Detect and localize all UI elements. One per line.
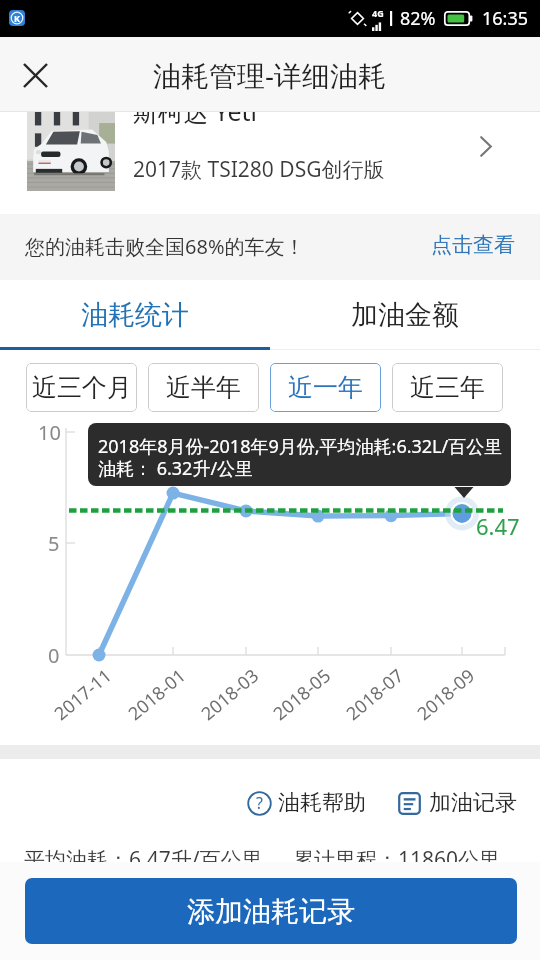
staticText: 加油记录: [429, 789, 517, 817]
button[interactable]: 近半年: [148, 363, 259, 412]
button[interactable]: 近一年: [270, 363, 381, 412]
staticText: 16:35: [482, 6, 529, 31]
staticText: 油耗： 6.32升/公里: [98, 456, 254, 481]
staticText: 油耗管理-详细油耗: [153, 56, 387, 94]
staticText: 6.47: [476, 511, 520, 541]
staticText: 油耗统计: [81, 298, 189, 332]
button[interactable]: 近三个月: [26, 363, 137, 412]
button[interactable]: Close: [12, 52, 58, 98]
staticText: 近一年: [288, 372, 363, 403]
button[interactable]: 加油金额: [270, 280, 540, 350]
staticText: 加油金额: [351, 298, 459, 332]
staticText: 累计里程：11860公里: [293, 845, 501, 862]
staticText: 平均油耗：6.47升/百公里: [24, 845, 263, 862]
button[interactable]: 加油记录: [398, 788, 517, 818]
staticText: 0: [48, 642, 60, 669]
staticText: 添加油耗记录: [187, 894, 355, 929]
button[interactable]: 您的油耗击败全国68%的车友！: [0, 214, 540, 280]
staticText: 点击查看: [431, 232, 515, 258]
staticText: 您的油耗击败全国68%的车友！: [25, 233, 305, 260]
staticText: 油耗帮助: [278, 789, 366, 817]
staticText: 82%: [400, 6, 436, 31]
staticText: K: [14, 12, 20, 24]
button[interactable]: ?: [247, 788, 366, 818]
staticText: 4G: [372, 7, 384, 19]
staticText: 斯柯达 Yeti: [133, 112, 257, 128]
button[interactable]: 油耗统计: [0, 280, 270, 350]
staticText: 5: [48, 530, 60, 557]
button[interactable]: 斯柯达 Yeti: [0, 112, 540, 214]
staticText: ?: [256, 792, 263, 814]
button[interactable]: 添加油耗记录: [25, 878, 517, 944]
staticText: 2018年8月份-2018年9月份,平均油耗:6.32L/百公里: [98, 434, 503, 459]
button[interactable]: 近三年: [392, 363, 503, 412]
staticText: 近半年: [166, 372, 241, 403]
staticText: 2017款 TSI280 DSG创行版: [133, 155, 385, 184]
staticText: 10: [38, 419, 61, 446]
staticText: 近三个月: [32, 372, 132, 403]
staticText: 近三年: [410, 372, 485, 403]
